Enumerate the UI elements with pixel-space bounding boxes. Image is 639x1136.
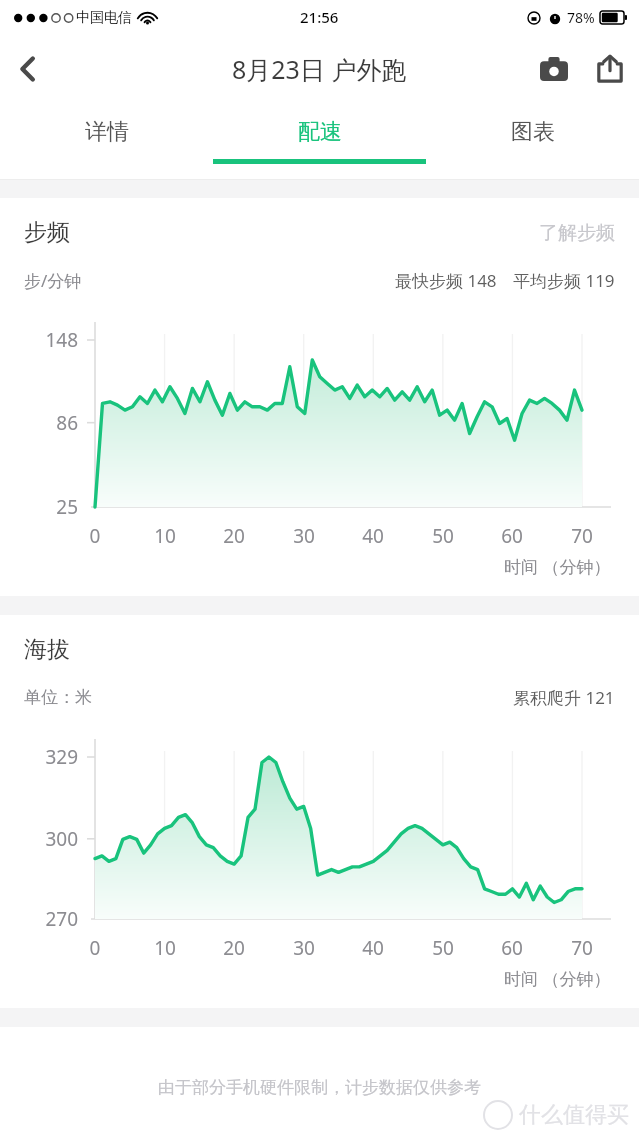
staticText: 270 xyxy=(26,906,78,932)
button[interactable]: Back xyxy=(0,41,56,97)
staticText: 50 xyxy=(418,935,468,961)
staticText: 时间 （分钟） xyxy=(504,967,611,990)
staticText: 由于部分手机硬件限制，计步数据仅供参考 xyxy=(158,1077,481,1098)
staticText: 累积爬升 121 xyxy=(513,686,615,709)
button[interactable]: 详情 xyxy=(0,102,213,180)
staticText: 平均步频 119 xyxy=(513,269,615,292)
staticText: 30 xyxy=(279,523,329,549)
staticText: 25 xyxy=(26,494,78,520)
staticText: 时间 （分钟） xyxy=(504,555,611,578)
staticText: 什么值得买 xyxy=(519,1101,629,1129)
staticText: 单位：米 xyxy=(24,687,92,708)
button[interactable]: Share xyxy=(581,40,639,98)
staticText: 20 xyxy=(209,523,259,549)
button[interactable]: 配速 xyxy=(213,102,426,180)
staticText: 详情 xyxy=(85,118,129,146)
staticText: 70 xyxy=(557,523,607,549)
button[interactable]: 了解步频 xyxy=(539,221,615,245)
staticText: 40 xyxy=(348,935,398,961)
staticText: 60 xyxy=(487,523,537,549)
staticText: 了解步频 xyxy=(539,221,615,245)
staticText: 10 xyxy=(140,523,190,549)
staticText: 中国电信 xyxy=(76,9,132,27)
staticText: 329 xyxy=(26,744,78,770)
staticText: 10 xyxy=(140,935,190,961)
staticText: 40 xyxy=(348,523,398,549)
staticText: 步/分钟 xyxy=(24,269,82,292)
staticText: 50 xyxy=(418,523,468,549)
staticText: 图表 xyxy=(511,118,555,146)
staticText: 60 xyxy=(487,935,537,961)
staticText: 最快步频 148 xyxy=(395,269,497,292)
staticText: 8月23日 户外跑 xyxy=(232,52,407,86)
button[interactable]: Camera xyxy=(527,42,581,96)
staticText: 20 xyxy=(209,935,259,961)
staticText: 21:56 xyxy=(300,7,339,27)
staticText: 海拔 xyxy=(24,635,70,664)
staticText: 步频 xyxy=(24,218,70,247)
button[interactable]: 图表 xyxy=(426,102,639,180)
staticText: 300 xyxy=(26,826,78,852)
staticText: 148 xyxy=(26,327,78,353)
staticText: 86 xyxy=(26,410,78,436)
staticText: 30 xyxy=(279,935,329,961)
staticText: 70 xyxy=(557,935,607,961)
staticText: 78% xyxy=(567,8,595,27)
staticText: 0 xyxy=(70,935,120,961)
staticText: 0 xyxy=(70,523,120,549)
staticText: 配速 xyxy=(298,118,342,146)
